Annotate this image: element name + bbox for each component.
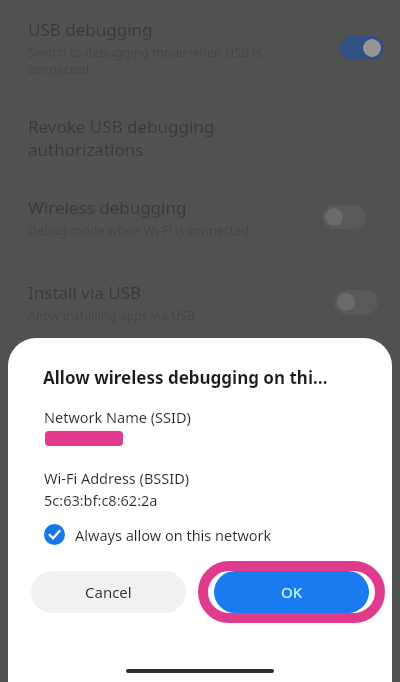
button[interactable]: USB debugging [0,8,400,88]
staticText: Install via USB [28,281,142,304]
button[interactable]: Toggle [340,36,384,60]
staticText: USB debugging [28,18,153,41]
staticText: Switch to debugging mode when USB is con… [28,44,262,78]
button[interactable]: Cancel [31,571,186,613]
button[interactable]: Always allow on this network [44,524,272,545]
staticText: Network Name (SSID) [44,407,191,427]
staticText: Revoke USB debugging authorizations [28,115,364,161]
button[interactable]: Toggle [322,205,366,229]
staticText: OK [281,582,303,602]
staticText: Allow wireless debugging on thi… [43,366,328,389]
button[interactable]: OK [214,571,369,613]
staticText: Debug mode when Wi-Fi is connected [28,222,249,239]
staticText: Cancel [85,582,132,602]
staticText: Wi-Fi Address (BSSID) [44,468,190,488]
button[interactable]: Install via USB [0,270,400,334]
staticText: Always allow on this network [75,525,272,545]
staticText: Allow installing apps via USB [28,307,196,324]
staticText: 5c:63:bf:c8:62:2a [44,490,158,510]
button[interactable]: Wireless debugging [0,185,400,249]
staticText: Wireless debugging [28,196,187,219]
button[interactable]: Revoke USB debugging authorizations [0,104,400,172]
button[interactable]: Toggle [334,290,378,314]
